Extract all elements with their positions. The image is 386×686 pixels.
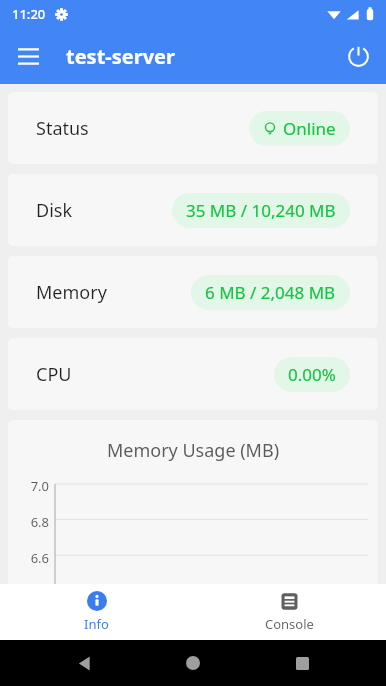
button[interactable]: Info: [0, 584, 193, 640]
staticText: 6.8: [8, 513, 49, 531]
staticText: Console: [265, 615, 314, 633]
staticText: Status: [36, 116, 89, 141]
staticText: Info: [84, 615, 109, 633]
staticText: Disk: [36, 198, 73, 223]
staticText: Online: [283, 117, 336, 140]
staticText: 7.0: [8, 477, 49, 495]
staticText: 0.00%: [288, 363, 336, 386]
staticText: 35 MB / 10,240 MB: [186, 199, 336, 222]
button[interactable]: Status: [8, 92, 378, 164]
button[interactable]: Recents: [278, 640, 326, 686]
button[interactable]: Console: [193, 584, 386, 640]
staticText: Memory Usage (MB): [8, 438, 378, 463]
staticText: 6.6: [8, 549, 49, 567]
staticText: 6 MB / 2,048 MB: [205, 281, 336, 304]
button[interactable]: CPU: [8, 338, 378, 410]
staticText: Memory: [36, 280, 107, 305]
button[interactable]: Home: [169, 640, 217, 686]
button[interactable]: Disk: [8, 174, 378, 246]
button[interactable]: Menu: [0, 28, 56, 84]
staticText: test-server: [66, 43, 175, 70]
staticText: CPU: [36, 362, 72, 387]
button[interactable]: Back: [61, 640, 109, 686]
button[interactable]: Power: [330, 28, 386, 84]
staticText: 11:20: [12, 5, 46, 23]
button[interactable]: Memory: [8, 256, 378, 328]
